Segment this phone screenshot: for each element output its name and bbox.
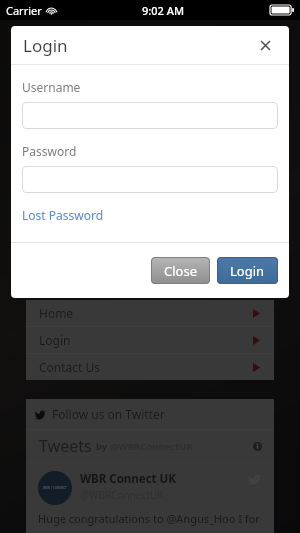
button[interactable] (22, 102, 278, 129)
other: Info (253, 442, 262, 451)
staticText: Login (23, 34, 68, 57)
button[interactable]: Login (217, 257, 278, 284)
staticText: Username (22, 79, 81, 95)
button[interactable]: Lost Password (22, 207, 104, 223)
button[interactable]: Follow us on Twitter (26, 399, 274, 429)
staticText: 9:02 AM (142, 3, 185, 18)
staticText: Huge congratulations to @Angus_Hoo I for… (38, 511, 262, 526)
button[interactable]: Home (26, 300, 274, 326)
staticText: Tweets (39, 435, 92, 457)
staticText: Lost Password (22, 207, 104, 223)
button[interactable]: Close dialog (253, 33, 277, 57)
staticText: Login (39, 332, 71, 348)
staticText: @WBRConnectUK (110, 440, 193, 453)
staticText: by (96, 440, 110, 453)
staticText: Password (22, 143, 77, 159)
staticText: Carrier (6, 3, 42, 18)
button[interactable]: Close (151, 257, 210, 284)
button[interactable]: Login (26, 327, 274, 353)
staticText: Close (164, 262, 197, 280)
button[interactable] (22, 166, 278, 193)
staticText: Login (230, 262, 265, 280)
staticText: Contact Us (39, 359, 101, 375)
staticText: WBR Connect UK (80, 471, 176, 487)
staticText: Home (39, 305, 74, 321)
staticText: Follow us on Twitter (52, 406, 165, 422)
staticText: WBR | CONNECT (43, 486, 67, 490)
staticText: @WBRConnectUK (80, 488, 164, 502)
button[interactable]: Contact Us (26, 354, 274, 380)
